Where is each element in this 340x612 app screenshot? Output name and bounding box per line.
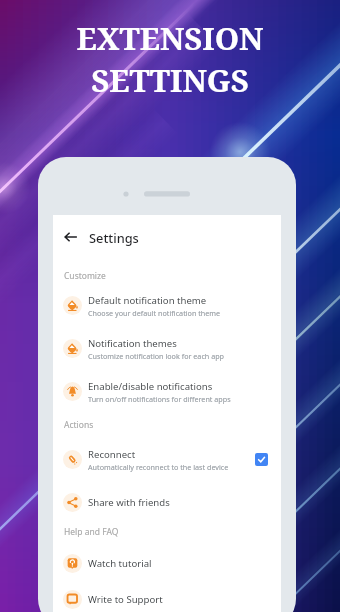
button[interactable]: Back	[53, 215, 281, 259]
staticText: Notification themes	[88, 337, 177, 350]
staticText: Customize	[64, 270, 106, 282]
button[interactable]: Reconnect	[53, 438, 281, 481]
staticText: SETTINGS	[91, 59, 249, 101]
staticText: Turn on/off notifications for different …	[88, 394, 231, 404]
button[interactable]: Share with friends	[53, 481, 281, 524]
staticText: EXTENSION	[76, 17, 264, 59]
button[interactable]: Notification themes	[53, 327, 281, 370]
button[interactable]: Back	[53, 215, 89, 259]
staticText: Watch tutorial	[88, 557, 152, 570]
button[interactable]: Enable/disable notifications	[53, 370, 281, 413]
staticText: Write to Support	[88, 593, 163, 606]
staticText: Enable/disable notifications	[88, 380, 213, 393]
staticText: Default notification theme	[88, 294, 207, 307]
staticText: Customize notification look for each app	[88, 351, 225, 361]
button[interactable]: Default notification theme	[53, 284, 281, 327]
button[interactable]: Watch tutorial	[53, 545, 281, 581]
button[interactable]: Write to Support	[53, 581, 281, 612]
staticText: Share with friends	[88, 496, 170, 509]
staticText: Actions	[64, 419, 94, 431]
button[interactable]: Reconnect toggle	[255, 453, 268, 466]
staticText: Reconnect	[88, 448, 136, 461]
staticText: Automatically reconnect to the last devi…	[88, 462, 229, 472]
staticText: Settings	[89, 229, 139, 246]
staticText: Choose your default notification theme	[88, 308, 221, 318]
staticText: Help and FAQ	[64, 526, 119, 538]
